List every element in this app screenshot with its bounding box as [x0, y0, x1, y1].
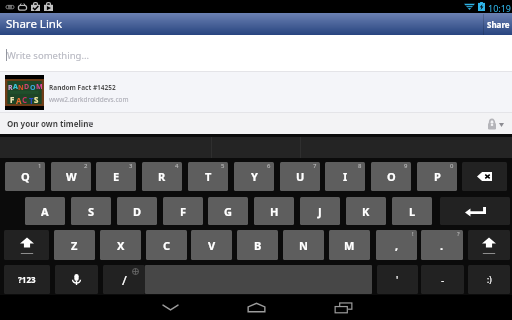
staticText: B	[254, 238, 262, 253]
staticText: T	[205, 169, 212, 184]
button[interactable]: X	[100, 230, 141, 260]
staticText: 6	[267, 162, 271, 170]
staticText: Share	[487, 19, 510, 30]
staticText: A	[16, 95, 22, 106]
button[interactable]: Emoji	[468, 265, 510, 294]
button[interactable]: Share	[484, 13, 512, 35]
staticText: ?	[457, 230, 460, 238]
staticText: J	[318, 204, 322, 219]
button[interactable]: N	[283, 230, 324, 260]
staticText: T	[29, 95, 34, 106]
button[interactable]: Privacy: only me	[484, 113, 510, 134]
button[interactable]: Dash	[421, 265, 464, 294]
button[interactable]: L	[392, 197, 432, 225]
button[interactable]: Shift	[468, 230, 510, 260]
button[interactable]: J	[300, 197, 340, 225]
button[interactable]: C	[146, 230, 187, 260]
staticText: !	[412, 230, 414, 238]
button[interactable]: G	[208, 197, 248, 225]
staticText: 5	[221, 162, 225, 170]
staticText: .	[440, 238, 444, 253]
button[interactable]: B	[237, 230, 278, 260]
button[interactable]: O	[371, 162, 411, 191]
staticText: X	[117, 238, 125, 253]
staticText: M	[36, 82, 41, 92]
button[interactable]: I	[325, 162, 365, 191]
staticText: Random Fact #14252	[49, 83, 116, 92]
staticText: N	[299, 238, 308, 253]
staticText: M	[344, 238, 355, 253]
staticText: Q	[21, 169, 30, 184]
staticText: D	[133, 204, 142, 219]
button[interactable]: T	[188, 162, 228, 191]
button[interactable]: Y	[234, 162, 274, 191]
button[interactable]: Hide keyboard	[150, 295, 190, 320]
button[interactable]: ,	[376, 230, 417, 260]
staticText: R	[158, 169, 166, 184]
button[interactable]: R	[0, 72, 512, 113]
button[interactable]: Enter	[440, 197, 510, 225]
staticText: P	[434, 169, 441, 184]
staticText: H	[270, 204, 279, 219]
staticText: 8	[358, 162, 362, 170]
staticText: E	[113, 169, 120, 184]
button[interactable]: P	[417, 162, 457, 191]
button[interactable]: V	[191, 230, 232, 260]
button[interactable]: Home	[236, 295, 276, 320]
staticText: 3	[129, 162, 133, 170]
staticText: A	[13, 82, 18, 92]
staticText: V	[208, 238, 216, 253]
button[interactable]: Voice input	[55, 265, 98, 294]
button[interactable]: U	[280, 162, 320, 191]
staticText: '	[396, 273, 399, 287]
staticText: Z	[71, 238, 78, 253]
button[interactable]: W	[51, 162, 91, 191]
button[interactable]: F	[163, 197, 203, 225]
staticText: Share Link	[6, 16, 63, 32]
button[interactable]: H	[254, 197, 294, 225]
staticText: O	[387, 169, 396, 184]
staticText: 2	[84, 162, 88, 170]
staticText: ?123	[18, 274, 36, 285]
staticText: R	[8, 83, 13, 93]
staticText: -	[441, 273, 445, 287]
staticText: /	[122, 271, 127, 289]
staticText: C	[22, 94, 28, 105]
staticText: ,	[395, 238, 399, 253]
staticText: K	[362, 204, 370, 219]
button[interactable]: D	[117, 197, 157, 225]
staticText: F	[180, 204, 187, 219]
button[interactable]: Symbols	[4, 265, 50, 294]
button[interactable]: S	[71, 197, 111, 225]
staticText: 1	[38, 162, 42, 170]
staticText: :)	[487, 274, 492, 285]
staticText: G	[224, 204, 232, 219]
button[interactable]: Backspace	[462, 162, 507, 191]
staticText: A	[41, 204, 49, 219]
button[interactable]: Apostrophe	[377, 265, 418, 294]
staticText: C	[163, 238, 171, 253]
button[interactable]: M	[329, 230, 370, 260]
button[interactable]: Shift	[4, 230, 49, 260]
staticText: N	[18, 83, 24, 93]
button[interactable]: .	[421, 230, 463, 260]
staticText: 9	[404, 162, 408, 170]
button[interactable]: K	[346, 197, 386, 225]
button[interactable]: Q	[5, 162, 45, 191]
button[interactable]: On your own timeline	[0, 113, 512, 134]
button[interactable]: R	[142, 162, 182, 191]
button[interactable]: Slash	[103, 265, 145, 294]
button[interactable]: A	[25, 197, 65, 225]
staticText: 4	[175, 162, 179, 170]
staticText: O	[30, 83, 36, 93]
staticText: Write something...	[7, 49, 90, 62]
button[interactable]: Z	[54, 230, 95, 260]
button[interactable]: Recent apps	[323, 295, 363, 320]
staticText: 7	[313, 162, 317, 170]
staticText: L	[409, 204, 416, 219]
staticText: 0	[450, 162, 454, 170]
button[interactable]: Write something...	[0, 35, 512, 72]
staticText: On your own timeline	[7, 118, 94, 129]
button[interactable]: E	[96, 162, 136, 191]
